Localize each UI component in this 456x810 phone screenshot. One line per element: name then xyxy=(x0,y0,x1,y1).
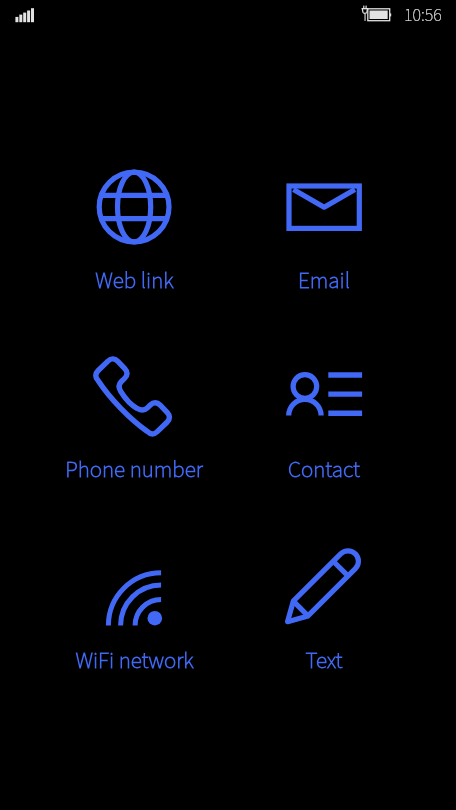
other: Signal strength xyxy=(0,0,456,34)
staticText: Phone number xyxy=(65,453,203,486)
button[interactable]: Email xyxy=(229,150,419,297)
staticText: Web link xyxy=(95,264,174,297)
button[interactable]: Phone number xyxy=(39,339,229,486)
button[interactable]: WiFi network xyxy=(39,530,229,677)
staticText: WiFi network xyxy=(75,644,194,677)
button[interactable]: Web link xyxy=(39,150,229,297)
staticText: Contact xyxy=(288,453,360,486)
button[interactable]: Contact xyxy=(229,339,419,486)
staticText: Text xyxy=(305,644,343,677)
staticText: 10:56 xyxy=(404,3,442,29)
button[interactable]: Text xyxy=(229,530,419,677)
staticText: Email xyxy=(298,264,350,297)
other: Battery charging xyxy=(0,0,456,34)
